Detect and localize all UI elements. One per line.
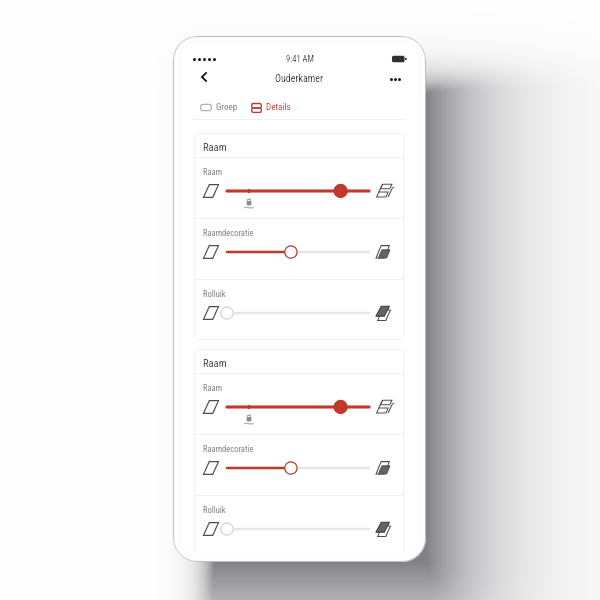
button[interactable] xyxy=(226,241,370,263)
staticText: Raamdecoratie xyxy=(203,228,254,238)
staticText: Raam xyxy=(203,383,223,393)
staticText: Raam xyxy=(203,141,227,153)
button[interactable] xyxy=(226,457,370,479)
staticText: 9:41 AM xyxy=(286,54,314,64)
button[interactable] xyxy=(226,396,370,418)
button[interactable] xyxy=(226,302,370,324)
staticText: Raam xyxy=(203,167,223,177)
staticText: Rolluik xyxy=(203,289,226,299)
button[interactable]: More options xyxy=(384,68,406,90)
staticText: Rolluik xyxy=(203,505,226,515)
button[interactable] xyxy=(226,518,370,540)
button[interactable]: Groep xyxy=(200,99,238,116)
button[interactable] xyxy=(226,180,370,202)
staticText: Raam xyxy=(203,357,227,369)
button[interactable]: Details xyxy=(251,99,291,116)
button[interactable]: Back xyxy=(193,66,215,88)
staticText: Ouderkamer xyxy=(275,73,324,85)
staticText: Details xyxy=(266,102,291,113)
staticText: Raamdecoratie xyxy=(203,444,254,454)
staticText: Groep xyxy=(216,102,238,113)
